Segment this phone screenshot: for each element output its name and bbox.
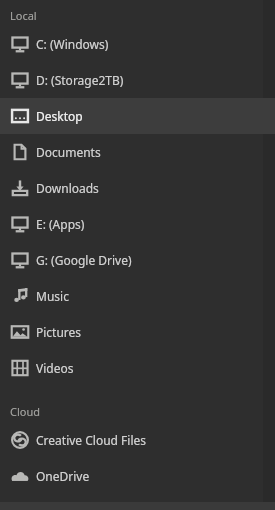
staticText: Videos [36,360,74,376]
button[interactable]: D: (Storage2TB) [0,62,275,98]
staticText: D: (Storage2TB) [36,72,124,88]
button[interactable]: E: (Apps) [0,206,275,242]
button[interactable]: Desktop [0,98,275,134]
staticText: Desktop [36,108,83,124]
button[interactable]: OneDrive [0,458,275,494]
button[interactable]: Music [0,278,275,314]
staticText: G: (Google Drive) [36,252,132,268]
staticText: Pictures [36,324,82,340]
button[interactable]: C: (Windows) [0,26,275,62]
button[interactable]: Videos [0,350,275,386]
staticText: Local [10,8,37,23]
button[interactable]: Pictures [0,314,275,350]
staticText: Music [36,288,69,304]
button[interactable]: Creative Cloud Files [0,422,275,458]
button[interactable]: G: (Google Drive) [0,242,275,278]
staticText: Downloads [36,180,99,196]
staticText: OneDrive [36,468,90,484]
staticText: Creative Cloud Files [36,432,147,448]
staticText: Documents [36,144,101,160]
button[interactable]: Documents [0,134,275,170]
staticText: E: (Apps) [36,216,85,232]
button[interactable]: Downloads [0,170,275,206]
staticText: C: (Windows) [36,36,109,52]
staticText: Cloud [10,404,41,419]
